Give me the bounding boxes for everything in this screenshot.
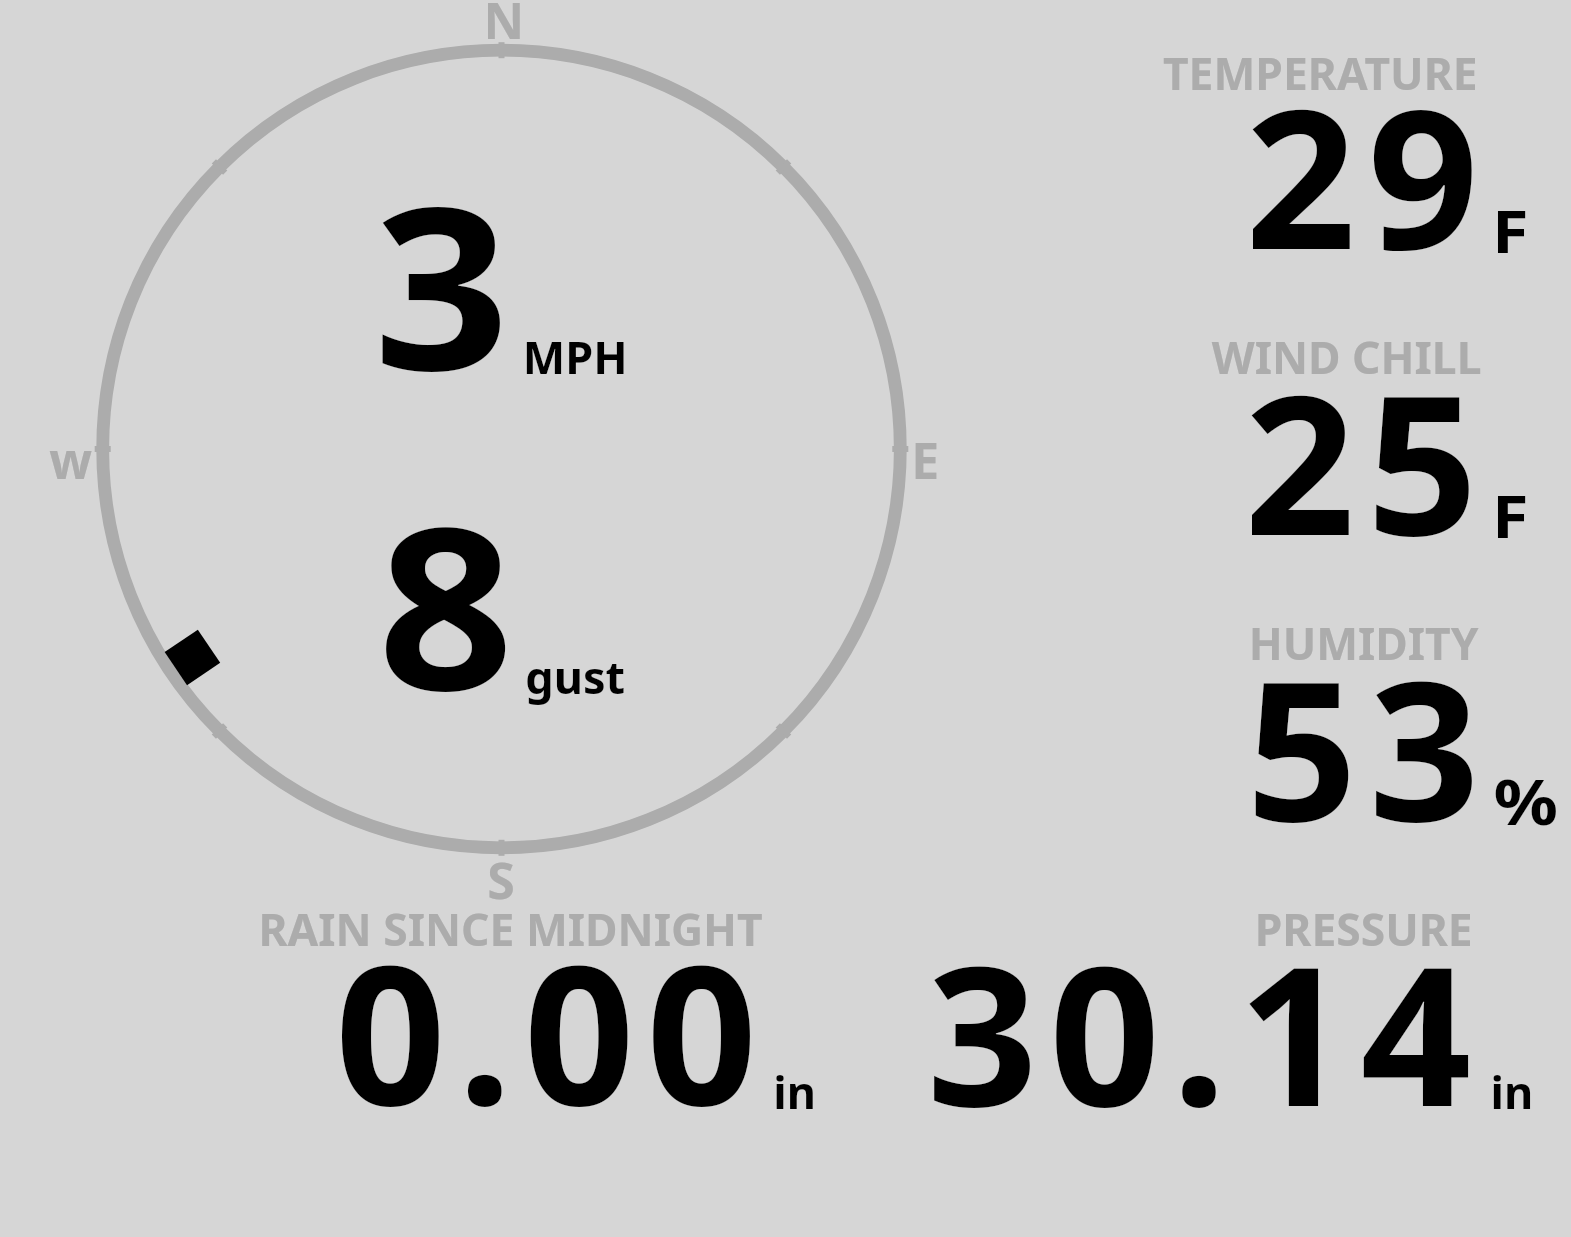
button[interactable]: Weather station dashboard — [0, 0, 1571, 1237]
